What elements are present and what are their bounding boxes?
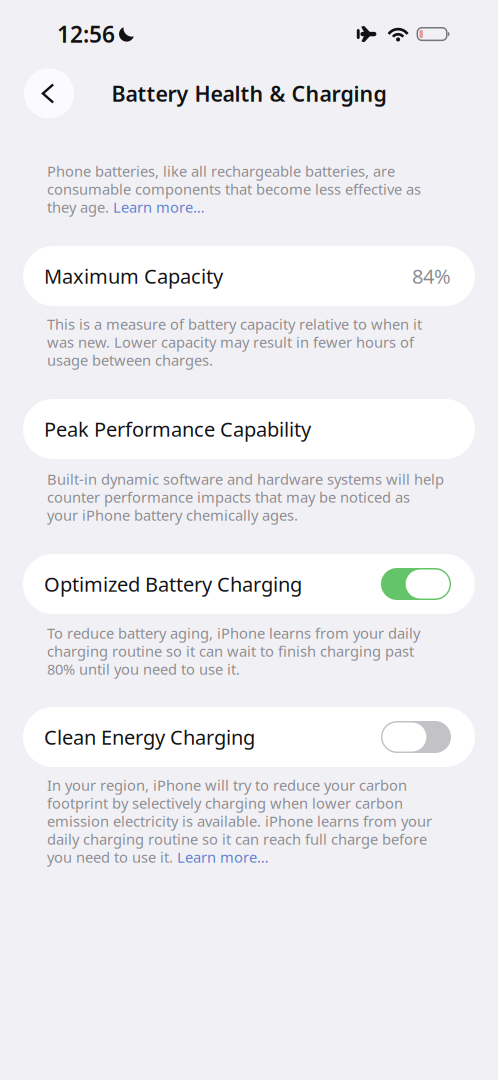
staticText: In your region, iPhone will try to reduc… [47, 775, 407, 795]
staticText: To reduce battery aging, iPhone learns f… [47, 623, 420, 643]
staticText: you need to use it. [47, 847, 177, 867]
staticText: Phone batteries, like all rechargeable b… [47, 161, 395, 181]
staticText: Learn more… [177, 847, 269, 867]
staticText: counter performance impacts that may be … [47, 487, 410, 507]
staticText: consumable components that become less e… [47, 179, 421, 199]
staticText: Optimized Battery Charging [44, 571, 302, 597]
staticText: 80% until you need to use it. [47, 659, 240, 679]
staticText: This is a measure of battery capacity re… [47, 314, 422, 334]
staticText: was new. Lower capacity may result in fe… [47, 332, 414, 352]
button[interactable]: Peak Performance Capability [0, 399, 498, 459]
staticText: 84% [412, 263, 451, 289]
button[interactable]: Learn more… [177, 847, 269, 867]
staticText: Learn more… [113, 197, 205, 217]
staticText: 12:56 [57, 19, 115, 49]
staticText: usage between charges. [47, 350, 213, 370]
staticText: charging routine so it can wait to finis… [47, 641, 414, 661]
staticText: Clean Energy Charging [44, 724, 255, 750]
staticText: footprint by selectively charging when l… [47, 793, 403, 813]
staticText: Peak Performance Capability [44, 416, 311, 442]
staticText: they age. [47, 197, 113, 217]
staticText: Built-in dynamic software and hardware s… [47, 469, 444, 489]
staticText: Maximum Capacity [44, 263, 223, 289]
button[interactable]: Learn more… [113, 197, 205, 217]
staticText: your iPhone battery chemically ages. [47, 505, 298, 525]
button[interactable]: Back [24, 68, 74, 118]
staticText: daily charging routine so it can reach f… [47, 829, 427, 849]
staticText: Battery Health & Charging [111, 79, 386, 108]
staticText: emission electricity is available. iPhon… [47, 811, 432, 831]
